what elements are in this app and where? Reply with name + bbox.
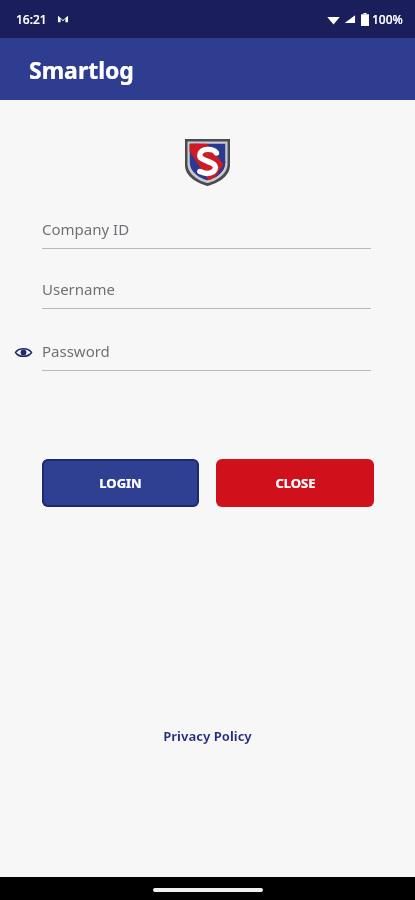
staticText: Privacy Policy — [163, 727, 252, 745]
staticText: Company ID — [42, 219, 130, 239]
staticText: 16:21 — [16, 11, 47, 27]
button[interactable]: CLOSE — [216, 459, 374, 507]
button[interactable]: Company ID — [0, 215, 415, 249]
staticText: Username — [42, 279, 115, 299]
staticText: 100% — [372, 11, 403, 27]
staticText: Smartlog — [29, 54, 134, 85]
button[interactable]: Username — [0, 275, 415, 309]
staticText: Password — [42, 341, 110, 361]
staticText: CLOSE — [275, 474, 316, 492]
button[interactable]: Show password — [0, 337, 415, 371]
button[interactable]: Privacy Policy — [155, 723, 260, 749]
other: Show password — [13, 342, 33, 362]
button[interactable]: LOGIN — [42, 459, 199, 507]
staticText: LOGIN — [99, 474, 142, 492]
